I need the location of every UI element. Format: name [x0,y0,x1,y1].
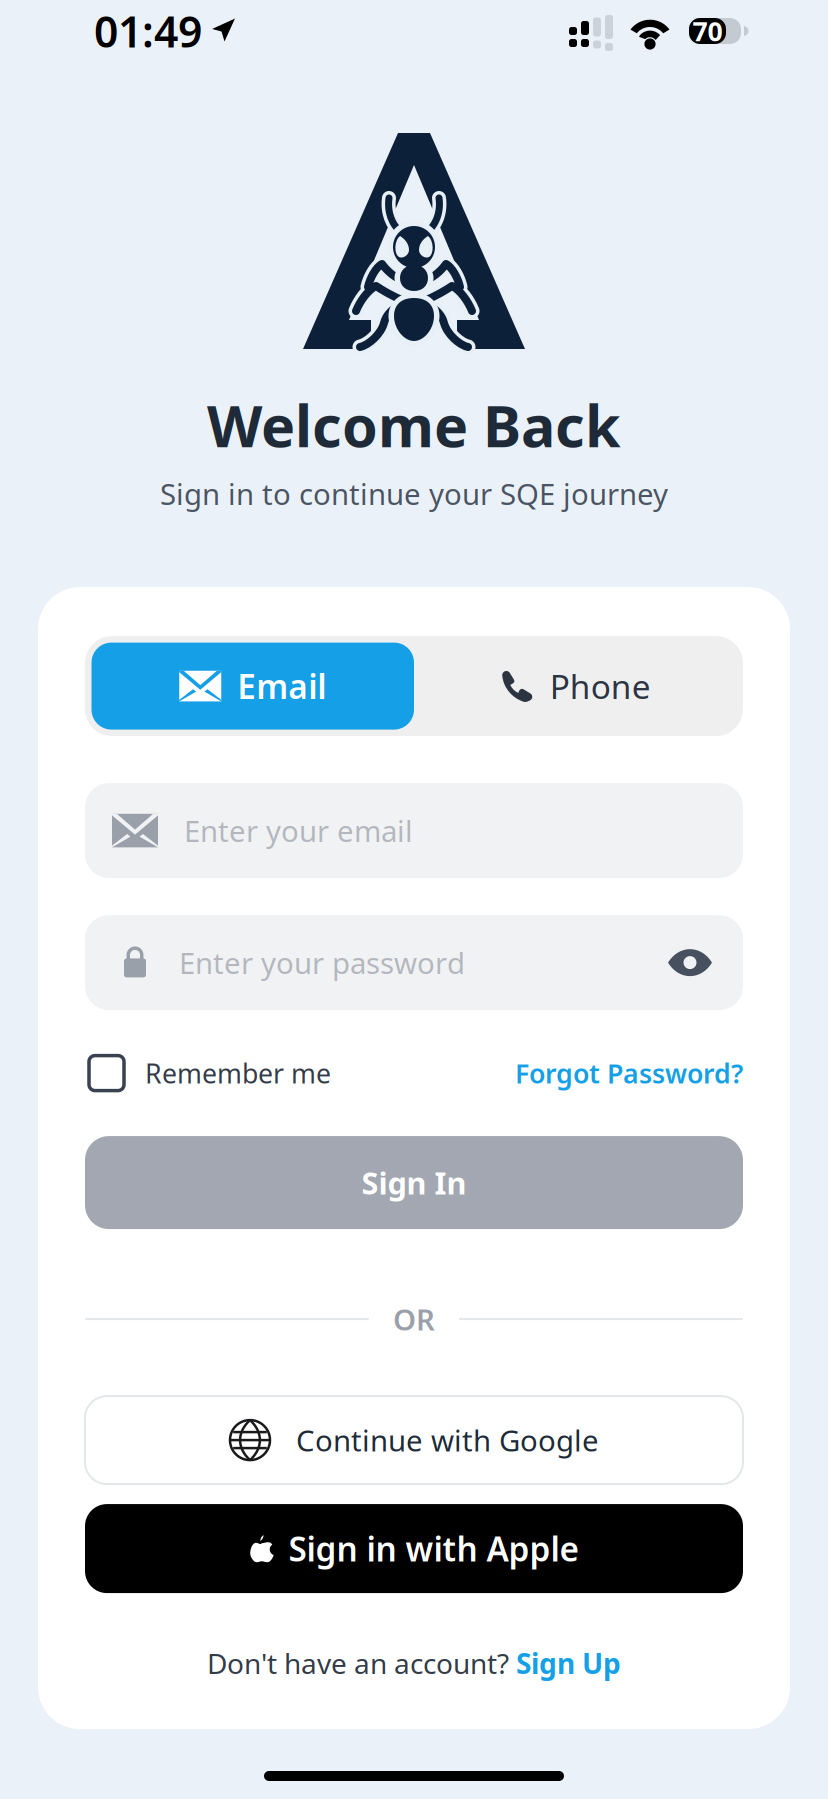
staticText: 70 [692,13,722,49]
button[interactable]: Phone [414,643,736,730]
staticText: OR [393,1300,435,1339]
staticText: Email [237,664,326,708]
button[interactable]: Sign Up [516,1644,621,1682]
staticText: Sign in with Apple [288,1526,579,1571]
staticText: Enter your email [184,811,413,850]
staticText: Welcome Back [207,387,621,463]
staticText: Sign In [361,1162,466,1203]
staticText: Remember me [145,1055,331,1091]
staticText: Don't have an account? [207,1644,516,1682]
staticText: Sign Up [516,1644,621,1682]
staticText: Sign in to continue your SQE journey [160,474,668,513]
button[interactable]: Continue with Google [85,1396,743,1484]
button[interactable]: Remember me [85,1051,331,1095]
button[interactable]: Sign in with Apple [85,1504,743,1593]
staticText: Continue with Google [296,1421,599,1460]
staticText: Enter your password [179,943,465,982]
staticText: Forgot Password? [515,1055,743,1091]
staticText: Phone [550,664,651,708]
button[interactable]: Show password [667,948,713,977]
staticText: 01:49 [94,3,202,59]
button[interactable]: Sign In [85,1136,743,1229]
button[interactable]: Email [91,643,414,730]
button[interactable]: Forgot Password? [515,1053,743,1093]
